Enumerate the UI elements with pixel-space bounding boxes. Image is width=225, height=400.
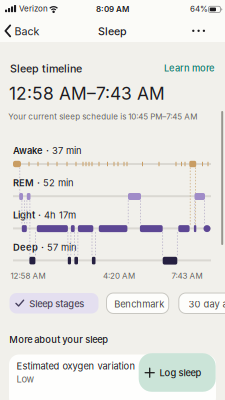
staticText: · [38, 210, 41, 221]
staticText: Back [14, 25, 39, 38]
staticText: 52 min [43, 177, 74, 188]
staticText: Estimated oxygen variation [16, 360, 135, 371]
staticText: Benchmark [114, 299, 164, 310]
staticText: 12:58 AM [10, 271, 45, 280]
staticText: · [46, 145, 49, 156]
staticText: Awake [13, 145, 43, 156]
staticText: Your current sleep schedule is 10:45 PM–… [8, 112, 197, 121]
staticText: 4:20 AM [103, 271, 135, 280]
staticText: 57 min [47, 242, 77, 253]
staticText: Verizon [19, 4, 48, 13]
staticText: REM [13, 177, 34, 188]
staticText: 12:58 AM–7:43 AM [9, 83, 165, 104]
staticText: More about your sleep [9, 334, 108, 345]
staticText: 4h 17m [44, 210, 76, 221]
staticText: Log sleep [159, 367, 201, 378]
staticText: Light [13, 210, 35, 221]
staticText: 30 day avg [188, 299, 225, 310]
staticText: Sleep [98, 25, 127, 38]
staticText: 8:09 AM [96, 4, 129, 14]
staticText: Low [16, 373, 34, 384]
staticText: 7:43 AM [171, 271, 202, 280]
staticText: Learn more [164, 62, 214, 73]
staticText: · [37, 177, 40, 188]
staticText: · [41, 242, 44, 253]
staticText: Sleep timeline [10, 62, 82, 75]
staticText: 37 min [52, 145, 82, 156]
staticText: 64% [190, 4, 208, 14]
staticText: Deep [13, 242, 38, 253]
staticText: Sleep stages [29, 298, 84, 309]
